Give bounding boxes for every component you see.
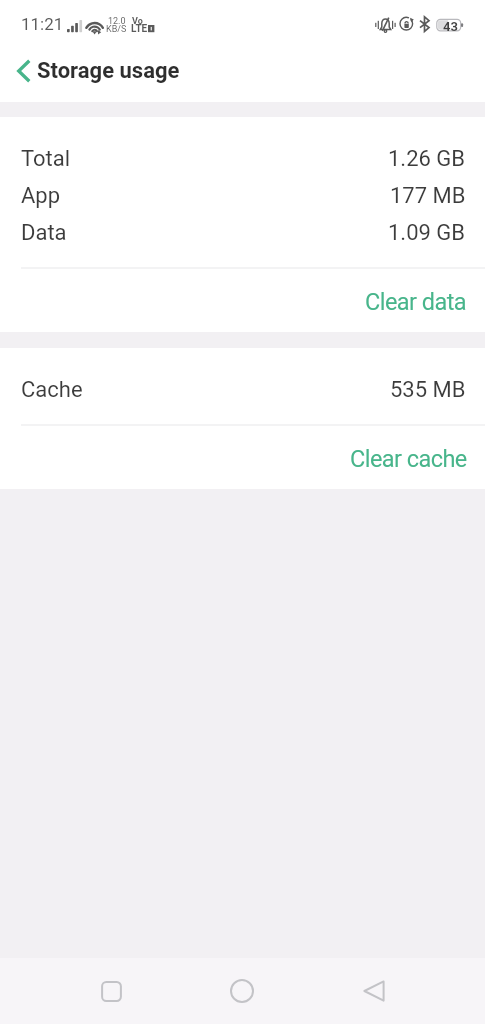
button[interactable]: Clear data	[0, 269, 485, 332]
button[interactable]: Cache	[0, 371, 485, 408]
staticText: LTE	[131, 23, 148, 35]
staticText: 12.0	[108, 16, 126, 27]
button[interactable]: Back	[346, 963, 402, 1019]
staticText: Vo	[132, 16, 143, 27]
staticText: App	[21, 183, 61, 209]
staticText: Cache	[21, 377, 83, 403]
staticText: 177 MB	[390, 183, 466, 209]
button[interactable]: Recent apps	[83, 963, 139, 1019]
staticText: 43	[443, 19, 458, 34]
staticText: Total	[21, 146, 71, 172]
staticText: 1.26 GB	[388, 146, 466, 172]
staticText: KB/S	[106, 24, 127, 35]
staticText: Clear cache	[350, 445, 467, 473]
button[interactable]: Clear cache	[0, 426, 485, 489]
staticText: 1.09 GB	[388, 220, 466, 246]
staticText: 535 MB	[390, 377, 466, 403]
button[interactable]: App	[0, 177, 485, 214]
staticText: Clear data	[365, 288, 467, 316]
staticText: 11:21	[21, 14, 64, 34]
button[interactable]: Home	[214, 963, 270, 1019]
button[interactable]: Total	[0, 140, 485, 177]
button[interactable]: Data	[0, 214, 485, 251]
staticText: Storage usage	[37, 58, 180, 84]
staticText: Data	[21, 220, 67, 246]
button[interactable]: Back	[4, 48, 44, 94]
